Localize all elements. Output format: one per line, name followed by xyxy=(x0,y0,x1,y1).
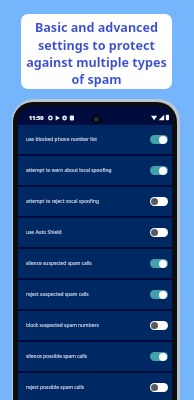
button[interactable]: block suspected spam numbers xyxy=(18,311,172,340)
button[interactable]: Setting on xyxy=(150,352,168,361)
staticText: use blocked phone number list xyxy=(26,136,150,143)
button[interactable]: reject possible spam calls xyxy=(18,373,172,400)
staticText: reject possible spam calls xyxy=(26,384,150,391)
button[interactable]: silence possible spam calls xyxy=(18,342,172,371)
button[interactable]: Setting on xyxy=(150,290,168,299)
staticText: silence suspected spam calls xyxy=(26,260,150,267)
staticText: Basic and advanced settings to protect a… xyxy=(26,19,167,87)
button[interactable]: Setting off xyxy=(150,383,168,392)
button[interactable]: reject suspected spam calls xyxy=(18,280,172,309)
button[interactable]: Setting on xyxy=(150,259,168,268)
staticText: attempt to warn about local spoofing xyxy=(26,167,150,174)
staticText: attempt to reject vocal spoofing xyxy=(26,198,150,205)
button[interactable]: attempt to reject vocal spoofing xyxy=(18,187,172,216)
staticText: silence possible spam calls xyxy=(26,353,150,360)
staticText: use Auto Shield xyxy=(26,229,150,236)
button[interactable]: use Auto Shield xyxy=(18,218,172,247)
button[interactable]: Setting off xyxy=(150,321,168,330)
button[interactable]: Setting off xyxy=(150,197,168,206)
staticText: 11:50 xyxy=(29,114,44,122)
button[interactable]: Setting off xyxy=(150,228,168,237)
button[interactable]: Setting on xyxy=(150,135,168,144)
button[interactable]: use blocked phone number list xyxy=(18,125,172,154)
button[interactable]: Setting on xyxy=(150,166,168,175)
staticText: block suspected spam numbers xyxy=(26,322,150,329)
staticText: reject suspected spam calls xyxy=(26,291,150,298)
button[interactable]: attempt to warn about local spoofing xyxy=(18,156,172,185)
button[interactable]: silence suspected spam calls xyxy=(18,249,172,278)
